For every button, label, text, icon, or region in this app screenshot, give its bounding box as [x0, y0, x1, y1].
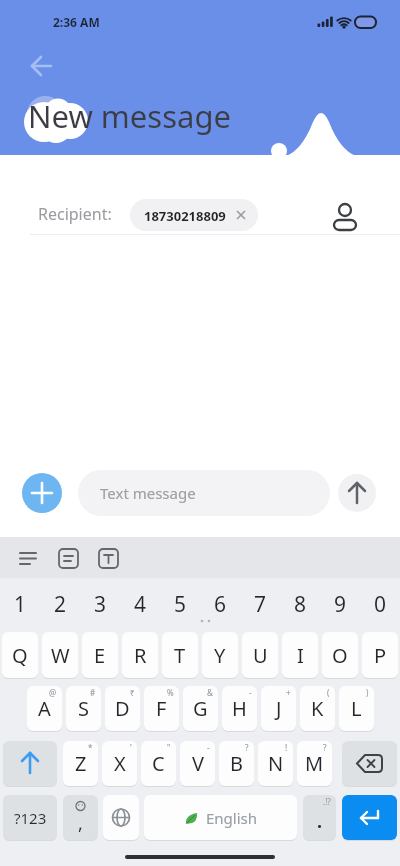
- button[interactable]: 5: [162, 585, 198, 623]
- staticText: U: [253, 642, 268, 669]
- staticText: S: [78, 695, 89, 722]
- button[interactable]: [103, 795, 139, 840]
- button[interactable]: [338, 474, 376, 512]
- button[interactable]: [24, 50, 58, 84]
- button[interactable]: [342, 741, 397, 786]
- staticText: L: [351, 695, 362, 722]
- staticText: -: [249, 687, 252, 698]
- staticText: F: [156, 695, 167, 722]
- staticText: ,: [78, 811, 83, 836]
- staticText: ₹: [130, 687, 135, 698]
- staticText: 2:36 AM: [53, 14, 100, 30]
- button[interactable]: R: [122, 632, 158, 678]
- staticText: *: [88, 742, 93, 753]
- button[interactable]: ,: [63, 795, 98, 840]
- staticText: +: [286, 687, 291, 698]
- button[interactable]: G: [183, 686, 218, 731]
- staticText: T: [174, 642, 186, 669]
- button[interactable]: 0: [362, 585, 398, 623]
- button[interactable]: 7: [242, 585, 278, 623]
- button[interactable]: C: [141, 741, 176, 786]
- staticText: X: [114, 750, 126, 777]
- staticText: V: [192, 750, 204, 777]
- button[interactable]: M: [297, 741, 332, 786]
- staticText: 6: [214, 590, 227, 619]
- staticText: A: [38, 695, 51, 722]
- staticText: Q: [12, 642, 28, 669]
- button[interactable]: [0, 537, 400, 578]
- button[interactable]: Z: [63, 741, 98, 786]
- button[interactable]: E: [82, 632, 118, 678]
- staticText: I: [297, 642, 304, 669]
- staticText: New message: [28, 95, 231, 137]
- button[interactable]: English: [144, 795, 297, 840]
- staticText: E: [94, 642, 106, 669]
- staticText: %: [167, 687, 174, 698]
- staticText: M: [305, 750, 324, 777]
- button[interactable]: 1: [2, 585, 38, 623]
- staticText: H: [232, 695, 247, 722]
- staticText: C: [152, 750, 165, 777]
- staticText: 5: [174, 590, 187, 619]
- button[interactable]: Text message: [78, 470, 330, 516]
- staticText: ): [366, 687, 369, 698]
- button[interactable]: Y: [202, 632, 238, 678]
- button[interactable]: .!?: [303, 795, 336, 840]
- staticText: -: [207, 742, 210, 753]
- button[interactable]: 6: [202, 585, 238, 623]
- staticText: &: [207, 687, 213, 698]
- button[interactable]: 2: [42, 585, 78, 623]
- button[interactable]: B: [219, 741, 254, 786]
- button[interactable]: K: [300, 686, 335, 731]
- staticText: #: [90, 687, 96, 698]
- button[interactable]: J: [261, 686, 296, 731]
- button[interactable]: [330, 194, 360, 234]
- staticText: @: [49, 687, 57, 698]
- staticText: 8: [294, 590, 307, 619]
- button[interactable]: F: [144, 686, 179, 731]
- button[interactable]: X: [102, 741, 137, 786]
- button[interactable]: [342, 795, 397, 840]
- staticText: 9: [334, 590, 347, 619]
- staticText: W: [51, 642, 70, 669]
- staticText: 18730218809: [144, 207, 226, 225]
- button[interactable]: I: [282, 632, 318, 678]
- staticText: ?123: [14, 808, 47, 828]
- staticText: 0: [374, 590, 387, 619]
- staticText: English: [206, 808, 258, 828]
- button[interactable]: H: [222, 686, 257, 731]
- button[interactable]: V: [180, 741, 215, 786]
- staticText: Z: [75, 750, 87, 777]
- button[interactable]: 18730218809: [130, 199, 258, 231]
- staticText: !: [285, 742, 288, 753]
- button[interactable]: L: [339, 686, 374, 731]
- button[interactable]: ?123: [3, 795, 57, 840]
- staticText: D: [115, 695, 130, 722]
- button[interactable]: [22, 473, 62, 513]
- staticText: G: [193, 695, 208, 722]
- staticText: ?: [323, 742, 327, 753]
- button[interactable]: S: [66, 686, 101, 731]
- button[interactable]: N: [258, 741, 293, 786]
- button[interactable]: P: [362, 632, 398, 678]
- button[interactable]: D: [105, 686, 140, 731]
- staticText: 2: [54, 590, 67, 619]
- staticText: Recipient:: [38, 203, 112, 225]
- button[interactable]: W: [42, 632, 78, 678]
- staticText: J: [276, 695, 282, 722]
- button[interactable]: [3, 741, 57, 786]
- staticText: 1: [14, 590, 27, 619]
- button[interactable]: 9: [322, 585, 358, 623]
- button[interactable]: 3: [82, 585, 118, 623]
- staticText: .: [317, 809, 323, 834]
- button[interactable]: A: [27, 686, 62, 731]
- button[interactable]: O: [322, 632, 358, 678]
- button[interactable]: T: [162, 632, 198, 678]
- staticText: N: [268, 750, 284, 777]
- staticText: ?: [245, 742, 249, 753]
- button[interactable]: 8: [282, 585, 318, 623]
- staticText: O: [332, 642, 348, 669]
- button[interactable]: Q: [2, 632, 38, 678]
- button[interactable]: 4: [122, 585, 158, 623]
- button[interactable]: U: [242, 632, 278, 678]
